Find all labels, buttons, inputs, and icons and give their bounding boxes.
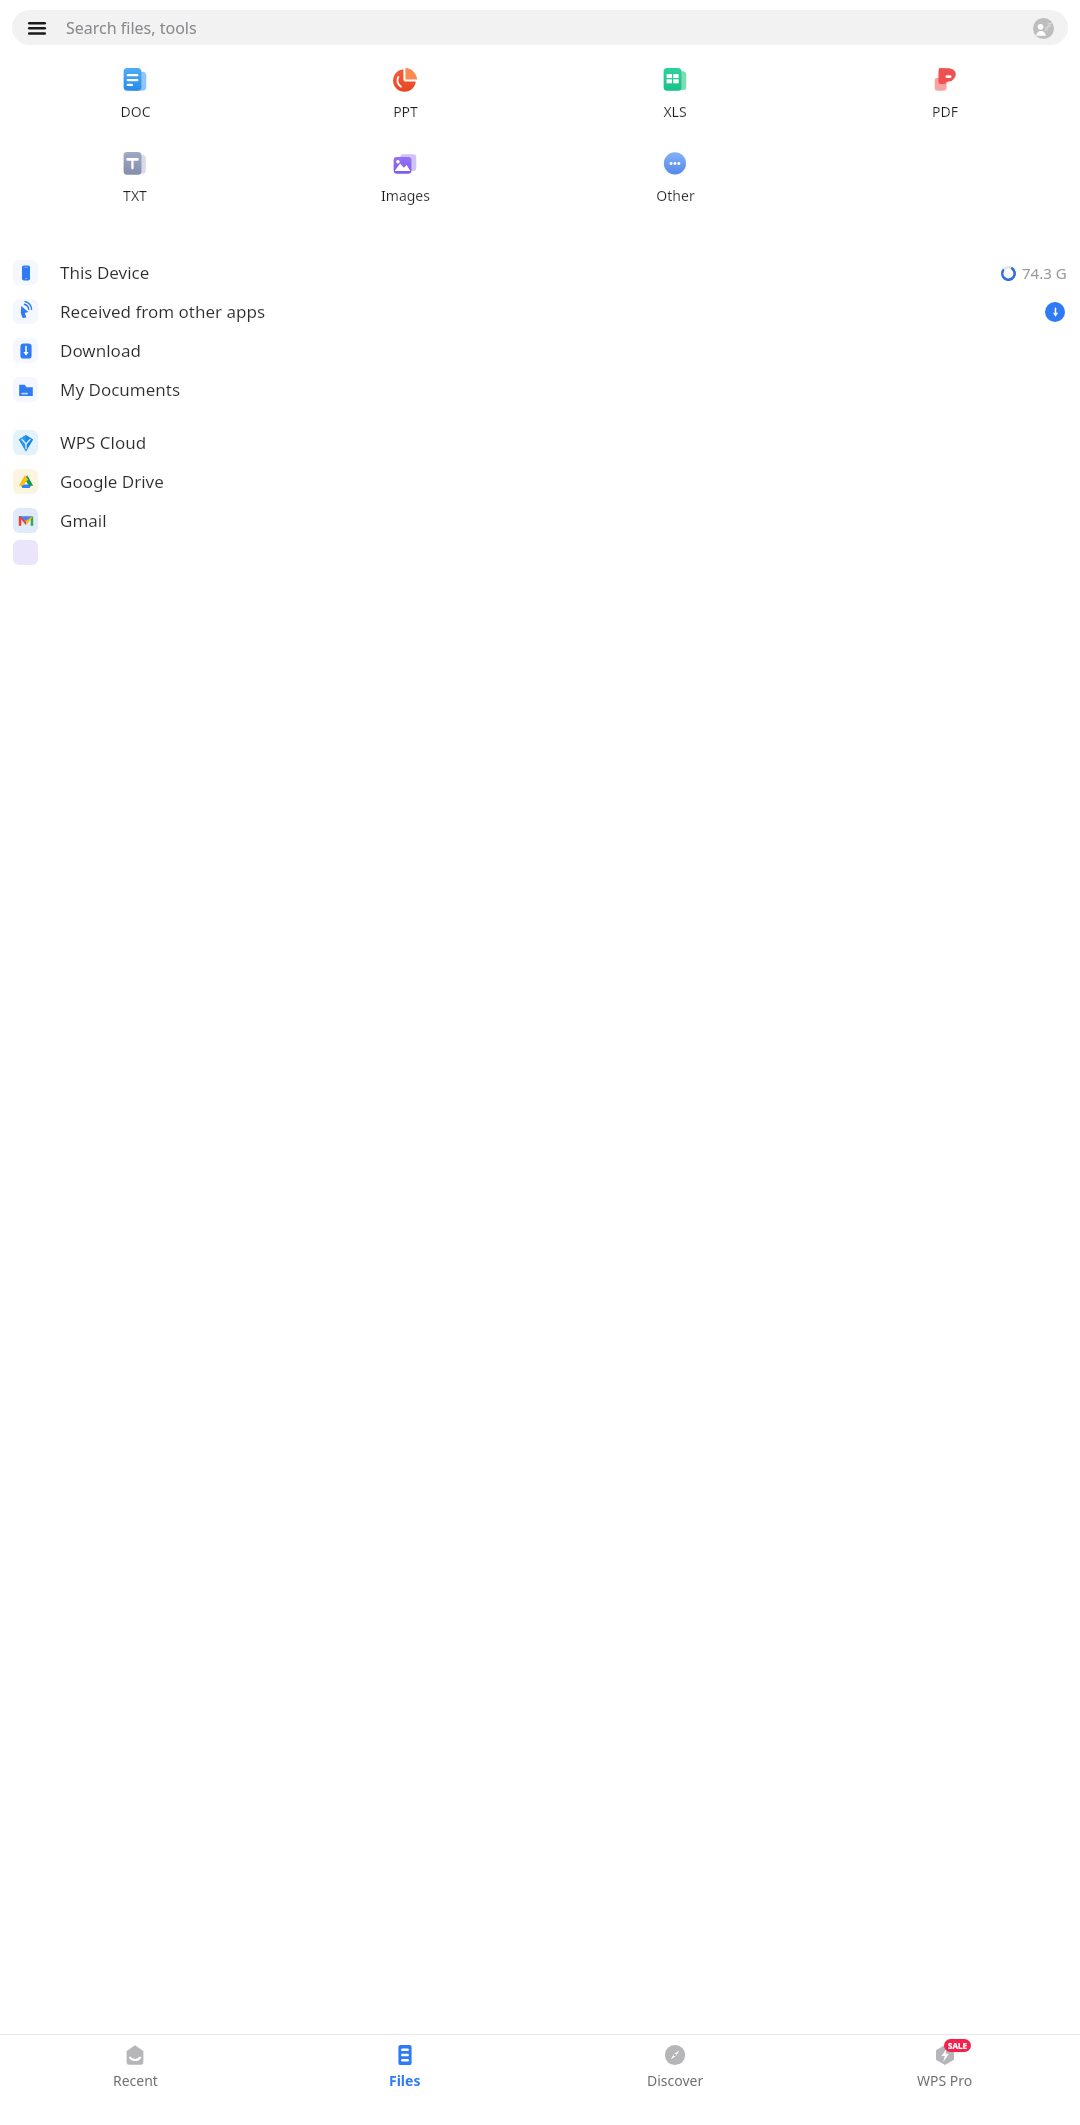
button[interactable]: Menu: [26, 17, 48, 39]
staticText: PDF: [932, 102, 958, 121]
button[interactable]: Recent: [0, 2035, 270, 2090]
staticText: Files: [389, 2071, 421, 2090]
staticText: Recent: [113, 2071, 158, 2090]
staticText: Discover: [647, 2071, 704, 2090]
button[interactable]: Discover: [540, 2035, 810, 2090]
button[interactable]: Google Drive: [0, 462, 1080, 501]
staticText: WPS Pro: [917, 2071, 973, 2090]
staticText: Google Drive: [60, 470, 1067, 493]
staticText: My Documents: [60, 378, 1067, 401]
staticText: Gmail: [60, 509, 1067, 532]
staticText: PPT: [393, 102, 418, 121]
button[interactable]: This Device: [0, 253, 1080, 292]
staticText: DOC: [120, 102, 151, 121]
staticText: This Device: [60, 261, 1001, 284]
button[interactable]: WPS Cloud: [0, 423, 1080, 462]
button[interactable]: PDF: [810, 63, 1080, 125]
staticText: Search files, tools: [66, 17, 1032, 39]
button[interactable]: PPT: [270, 63, 540, 125]
button[interactable]: Files: [270, 2035, 540, 2090]
staticText: WPS Cloud: [60, 431, 1067, 454]
button[interactable]: Profile: [1032, 17, 1054, 39]
button[interactable]: XLS: [540, 63, 810, 125]
button[interactable]: Other: [540, 147, 810, 209]
staticText: 74.3 G: [1022, 263, 1067, 283]
button[interactable]: Images: [270, 147, 540, 209]
button[interactable]: DOC: [0, 63, 270, 125]
button[interactable]: SALE: [810, 2035, 1080, 2090]
staticText: SALE: [948, 2040, 967, 2051]
button[interactable]: My Documents: [0, 370, 1080, 409]
staticText: Download: [60, 339, 1067, 362]
button[interactable]: Menu: [12, 10, 1068, 45]
button[interactable]: Download: [1045, 302, 1065, 322]
button[interactable]: Gmail: [0, 501, 1080, 540]
button[interactable]: Download: [0, 331, 1080, 370]
button[interactable]: Received from other apps: [0, 292, 1080, 331]
staticText: Images: [381, 186, 430, 205]
staticText: Received from other apps: [60, 300, 1045, 323]
staticText: Other: [656, 186, 695, 205]
staticText: XLS: [663, 102, 687, 121]
staticText: TXT: [123, 186, 147, 205]
button[interactable]: TXT: [0, 147, 270, 209]
